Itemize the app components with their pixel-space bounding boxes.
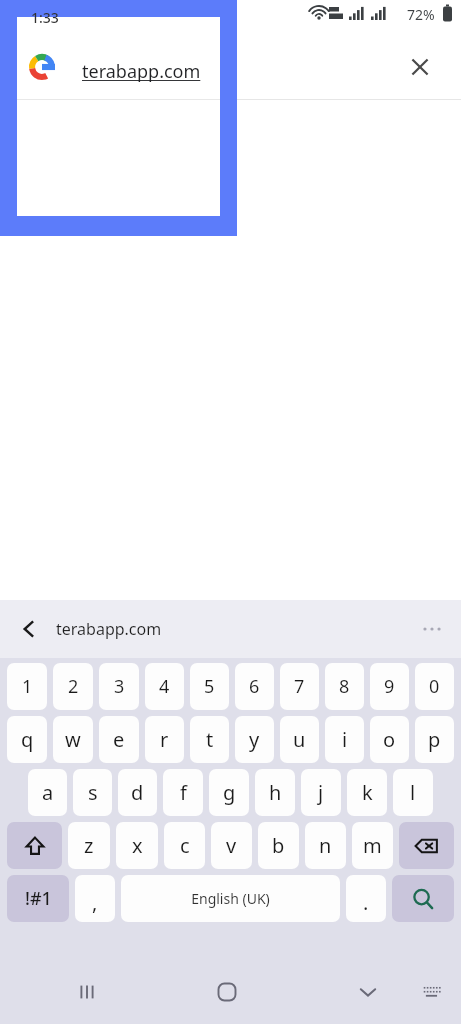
button[interactable]: n: [305, 822, 346, 869]
button[interactable]: .: [346, 875, 386, 922]
button[interactable]: w: [53, 716, 93, 763]
button[interactable]: x: [116, 822, 158, 869]
button[interactable]: More options: [411, 608, 453, 650]
staticText: l: [410, 779, 416, 806]
staticText: a: [42, 779, 54, 806]
staticText: c: [180, 832, 190, 859]
button[interactable]: 0: [415, 663, 454, 710]
button[interactable]: h: [255, 769, 295, 816]
staticText: .: [363, 889, 369, 916]
button[interactable]: English (UK): [121, 875, 340, 922]
staticText: 1: [22, 674, 33, 699]
button[interactable]: 7: [280, 663, 319, 710]
button[interactable]: z: [68, 822, 110, 869]
button[interactable]: 6: [235, 663, 274, 710]
button[interactable]: Search: [392, 875, 454, 922]
button[interactable]: j: [301, 769, 341, 816]
staticText: m: [363, 832, 382, 859]
staticText: 5: [204, 674, 215, 699]
button[interactable]: l: [393, 769, 433, 816]
staticText: z: [84, 832, 94, 859]
button[interactable]: r: [145, 716, 184, 763]
button[interactable]: 1: [7, 663, 47, 710]
staticText: p: [428, 726, 441, 753]
button[interactable]: t: [190, 716, 229, 763]
button[interactable]: s: [73, 769, 112, 816]
staticText: i: [342, 726, 348, 753]
staticText: 3: [114, 674, 125, 699]
button[interactable]: i: [325, 716, 364, 763]
staticText: 72%: [407, 5, 435, 24]
staticText: w: [65, 726, 81, 753]
button[interactable]: f: [163, 769, 203, 816]
button[interactable]: y: [235, 716, 274, 763]
button[interactable]: Close: [398, 45, 442, 89]
staticText: k: [362, 779, 373, 806]
staticText: 4: [159, 674, 170, 699]
button[interactable]: !#1: [7, 875, 69, 922]
button[interactable]: terabapp.com: [56, 618, 411, 640]
staticText: y: [249, 726, 260, 753]
button[interactable]: p: [415, 716, 454, 763]
staticText: t: [206, 726, 214, 753]
button[interactable]: q: [7, 716, 47, 763]
staticText: !#1: [25, 886, 52, 911]
staticText: 2: [68, 674, 79, 699]
staticText: ,: [92, 889, 98, 916]
button[interactable]: ,: [75, 875, 115, 922]
button[interactable]: Change keyboard: [407, 967, 457, 1017]
staticText: f: [180, 779, 187, 806]
button[interactable]: Recents: [60, 965, 114, 1019]
staticText: 1:33: [31, 8, 59, 27]
button[interactable]: 2: [53, 663, 93, 710]
staticText: English (UK): [191, 889, 270, 908]
button[interactable]: m: [352, 822, 393, 869]
staticText: b: [272, 832, 285, 859]
button[interactable]: 4: [145, 663, 184, 710]
button[interactable]: u: [280, 716, 319, 763]
button[interactable]: v: [211, 822, 252, 869]
button[interactable]: 9: [370, 663, 409, 710]
staticText: 9: [384, 674, 395, 699]
button[interactable]: d: [118, 769, 157, 816]
staticText: u: [293, 726, 306, 753]
button[interactable]: 5: [190, 663, 229, 710]
button[interactable]: Hide keyboard: [341, 965, 395, 1019]
staticText: 7: [294, 674, 305, 699]
staticText: g: [223, 779, 236, 806]
staticText: x: [132, 832, 143, 859]
button[interactable]: k: [347, 769, 387, 816]
button[interactable]: Shift: [7, 822, 62, 869]
staticText: 8: [339, 674, 350, 699]
button[interactable]: 3: [99, 663, 139, 710]
staticText: s: [88, 779, 98, 806]
staticText: n: [319, 832, 332, 859]
button[interactable]: Backspace: [399, 822, 454, 869]
staticText: 0: [429, 674, 440, 699]
staticText: j: [318, 779, 324, 806]
button[interactable]: b: [258, 822, 299, 869]
button[interactable]: c: [164, 822, 205, 869]
staticText: o: [383, 726, 396, 753]
staticText: d: [131, 779, 144, 806]
button[interactable]: 8: [325, 663, 364, 710]
staticText: r: [160, 726, 169, 753]
button[interactable]: Back: [8, 608, 50, 650]
staticText: 6: [249, 674, 260, 699]
staticText: q: [21, 726, 34, 753]
staticText: terabapp.com: [82, 59, 201, 84]
button[interactable]: g: [209, 769, 249, 816]
staticText: h: [269, 779, 282, 806]
staticText: e: [113, 726, 125, 753]
staticText: v: [226, 832, 237, 859]
button[interactable]: e: [99, 716, 139, 763]
button[interactable]: a: [28, 769, 67, 816]
button[interactable]: Home: [200, 965, 254, 1019]
button[interactable]: o: [370, 716, 409, 763]
